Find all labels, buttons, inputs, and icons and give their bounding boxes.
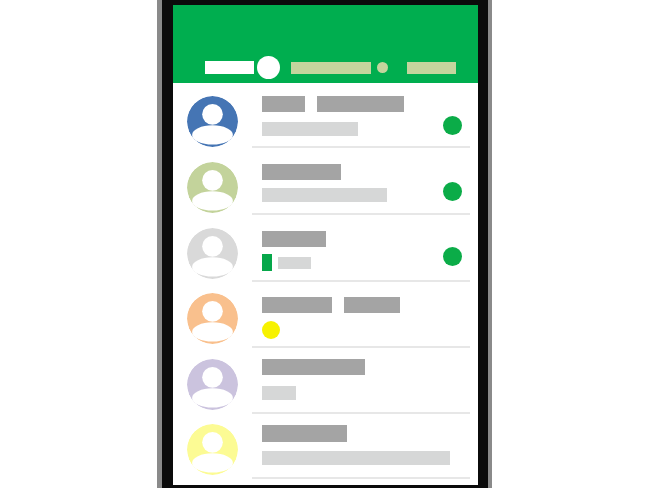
- button[interactable]: [173, 346, 478, 413]
- other: Unread messages: [443, 116, 462, 135]
- button[interactable]: More options: [377, 62, 388, 73]
- button[interactable]: Camera: [257, 56, 280, 79]
- other: Chats top app bar: [173, 5, 478, 83]
- button[interactable]: Unread messages: [173, 215, 478, 281]
- button[interactable]: [173, 411, 478, 478]
- button[interactable]: Unread messages: [173, 83, 478, 147]
- button[interactable]: Unread messages: [173, 149, 478, 214]
- other: Unread messages: [443, 182, 462, 201]
- other: Unread messages: [443, 247, 462, 266]
- button[interactable]: [173, 280, 478, 347]
